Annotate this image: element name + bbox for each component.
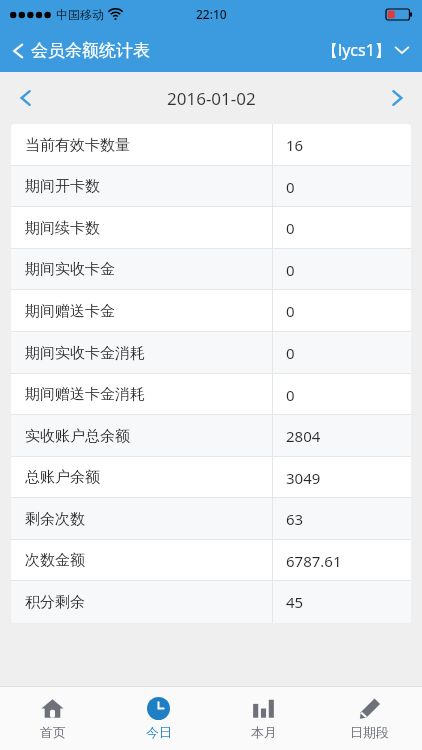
button[interactable]: 期间续卡数 <box>11 207 411 249</box>
button[interactable]: 实收账户总余额 <box>11 415 411 457</box>
button[interactable]: 期间赠送卡金消耗 <box>11 374 411 415</box>
staticText: 【lycs1】 <box>322 39 391 61</box>
staticText: 63 <box>286 509 304 529</box>
staticText: 今日 <box>146 724 172 740</box>
button[interactable]: 期间实收卡金消耗 <box>11 332 411 374</box>
button[interactable]: 积分剩余 <box>11 581 411 623</box>
button[interactable]: 首页 <box>0 687 105 750</box>
staticText: 期间赠送卡金 <box>25 302 115 321</box>
staticText: 本月 <box>251 724 277 740</box>
button[interactable]: 总账户余额 <box>11 457 411 498</box>
button[interactable]: 次数金额 <box>11 540 411 581</box>
staticText: 实收账户总余额 <box>25 427 130 446</box>
staticText: 16 <box>286 135 304 155</box>
staticText: 首页 <box>40 724 66 740</box>
staticText: 积分剩余 <box>25 593 85 612</box>
button[interactable]: 今日 <box>106 687 211 750</box>
button[interactable]: 期间开卡数 <box>11 166 411 207</box>
staticText: 45 <box>286 592 304 612</box>
staticText: 3049 <box>286 468 321 488</box>
staticText: 剩余次数 <box>25 510 85 529</box>
button[interactable]: 【lycs1】 <box>322 39 422 61</box>
button[interactable]: 当前有效卡数量 <box>11 124 411 166</box>
staticText: 0 <box>286 301 295 321</box>
staticText: 会员余额统计表 <box>31 40 150 61</box>
staticText: 0 <box>286 260 295 280</box>
button[interactable]: Previous day <box>0 87 50 109</box>
staticText: 期间实收卡金 <box>25 260 115 279</box>
button[interactable]: 日期段 <box>317 687 422 750</box>
staticText: 期间续卡数 <box>25 219 100 238</box>
staticText: 0 <box>286 177 295 197</box>
button[interactable]: 期间实收卡金 <box>11 249 411 290</box>
button[interactable]: Back <box>0 40 160 61</box>
staticText: 0 <box>286 343 295 363</box>
staticText: 中国移动 <box>56 7 104 22</box>
staticText: 总账户余额 <box>25 468 100 487</box>
button[interactable]: 期间赠送卡金 <box>11 290 411 332</box>
button[interactable]: 本月 <box>211 687 316 750</box>
staticText: 次数金额 <box>25 551 85 570</box>
staticText: 2016-01-02 <box>167 87 256 110</box>
staticText: 当前有效卡数量 <box>25 136 130 155</box>
staticText: 0 <box>286 218 295 238</box>
staticText: 期间赠送卡金消耗 <box>25 385 145 404</box>
staticText: 2804 <box>286 426 321 446</box>
staticText: 期间开卡数 <box>25 177 100 196</box>
staticText: 6787.61 <box>286 551 342 571</box>
other: Back <box>12 41 24 61</box>
staticText: 期间实收卡金消耗 <box>25 344 145 363</box>
button[interactable]: Next day <box>372 87 422 109</box>
staticText: 0 <box>286 385 295 405</box>
button[interactable]: 剩余次数 <box>11 498 411 540</box>
staticText: 日期段 <box>350 724 389 740</box>
staticText: 22:10 <box>196 6 227 22</box>
